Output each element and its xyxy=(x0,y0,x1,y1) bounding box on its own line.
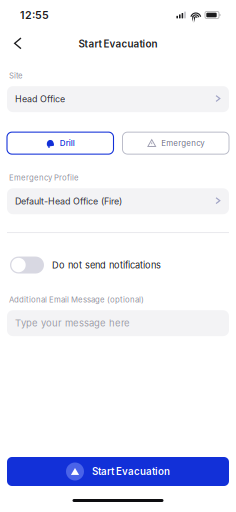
staticText: 12:55 xyxy=(20,9,49,21)
button[interactable]: Start Evacuation xyxy=(0,457,236,486)
staticText: Drill xyxy=(60,138,75,148)
staticText: Type your message here xyxy=(15,318,130,329)
staticText: Default-Head Office (Fire) xyxy=(15,196,122,206)
staticText: Do not send notifications xyxy=(52,260,161,270)
staticText: Start Evacuation xyxy=(78,38,157,50)
staticText: Emergency xyxy=(161,138,204,148)
button[interactable]: Default-Head Office (Fire) xyxy=(7,188,229,214)
button[interactable]: Head Office xyxy=(7,86,229,112)
staticText: Site xyxy=(9,71,23,80)
button[interactable]: Back xyxy=(7,32,29,56)
staticText: Head Office xyxy=(15,94,65,104)
button[interactable]: Drill xyxy=(7,132,113,154)
button[interactable]: Type your message here xyxy=(7,310,229,336)
staticText: Start Evacuation xyxy=(92,466,170,477)
button[interactable]: Do not send notifications xyxy=(7,256,229,274)
staticText: Emergency Profile xyxy=(9,173,79,182)
button[interactable]: Emergency xyxy=(122,132,229,154)
staticText: Additional Email Message (optional) xyxy=(9,295,144,304)
